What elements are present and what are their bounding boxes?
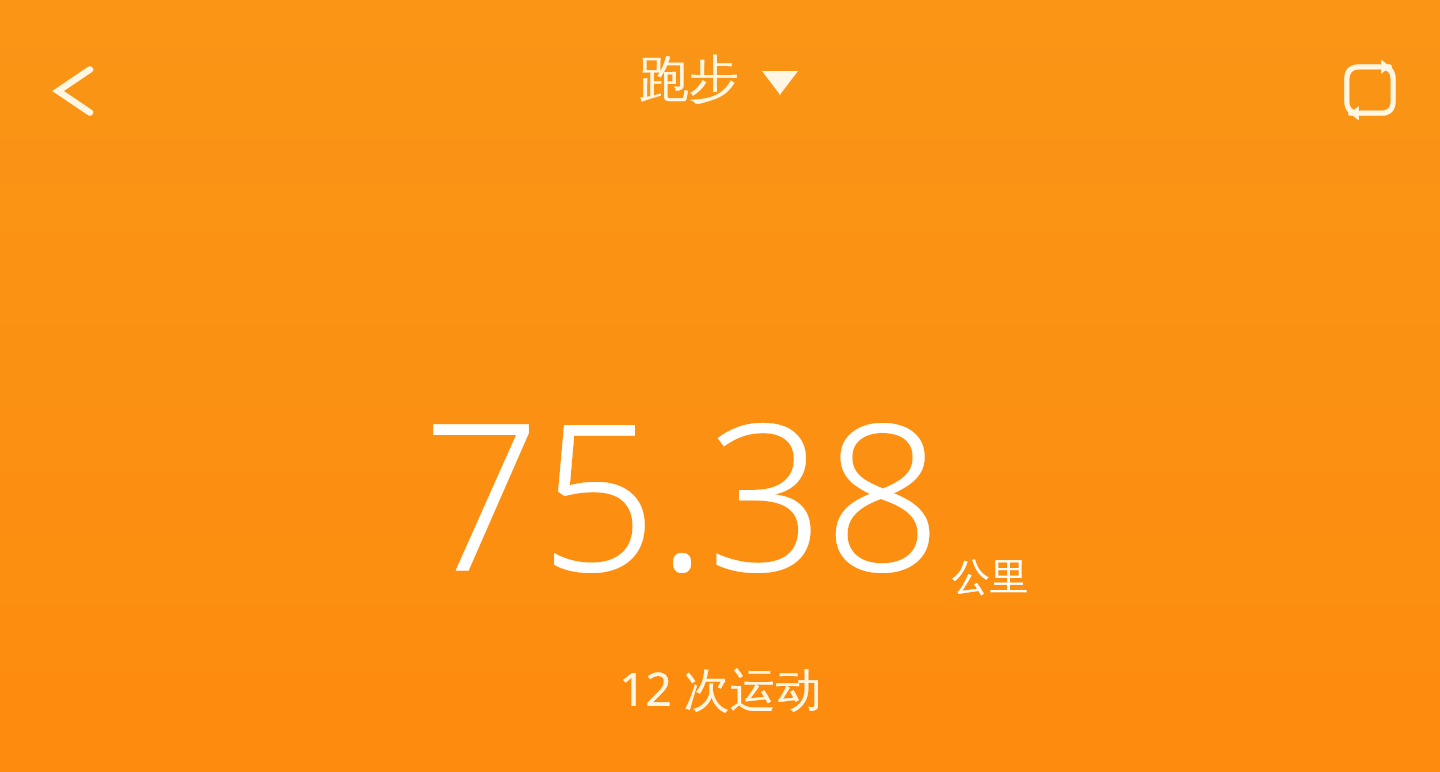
button[interactable]: Back	[26, 43, 122, 139]
staticText: 跑步	[639, 48, 739, 111]
staticText: 75.38	[423, 352, 942, 631]
staticText: 12 次运动	[619, 657, 822, 720]
button[interactable]: Repeat	[1322, 42, 1418, 138]
button[interactable]: 跑步	[629, 42, 811, 117]
staticText: 公里	[952, 553, 1028, 601]
